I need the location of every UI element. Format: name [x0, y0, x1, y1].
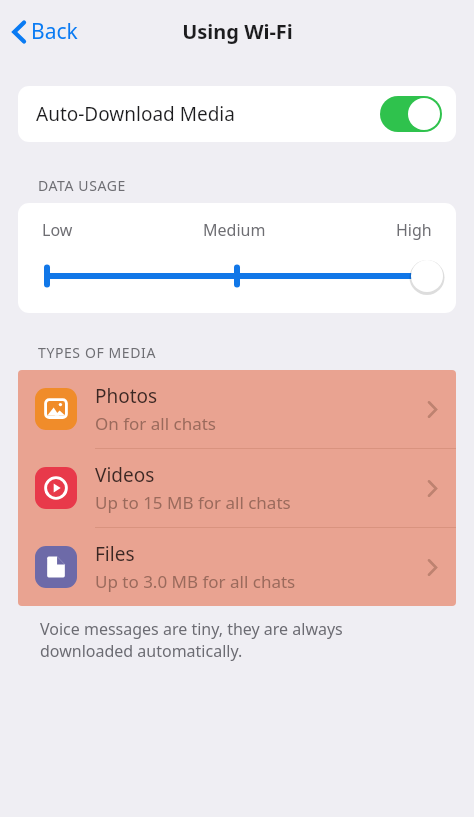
button[interactable]: Photos — [18, 370, 456, 448]
button[interactable]: Data usage slider, High — [18, 255, 456, 297]
staticText: Files — [95, 541, 135, 567]
staticText: Up to 15 MB for all chats — [95, 491, 291, 514]
staticText: Voice messages are tiny, they are always… — [40, 618, 343, 662]
staticText: Medium — [203, 219, 266, 241]
staticText: On for all chats — [95, 412, 216, 435]
staticText: Photos — [95, 383, 158, 409]
staticText: Auto-Download Media — [36, 101, 235, 127]
staticText: Videos — [95, 462, 155, 488]
staticText: Up to 3.0 MB for all chats — [95, 570, 296, 593]
staticText: High — [396, 219, 432, 241]
staticText: DATA USAGE — [38, 176, 126, 195]
button[interactable]: Auto-Download Media toggle, on — [380, 96, 442, 132]
staticText: Using Wi-Fi — [182, 18, 293, 45]
staticText: TYPES OF MEDIA — [38, 343, 156, 362]
staticText: Back — [31, 17, 78, 46]
button[interactable]: Videos — [18, 449, 456, 527]
button[interactable]: Auto-Download Media — [18, 86, 456, 142]
staticText: Low — [42, 219, 73, 241]
button[interactable]: Back — [8, 13, 86, 50]
button[interactable]: Files — [18, 528, 456, 606]
